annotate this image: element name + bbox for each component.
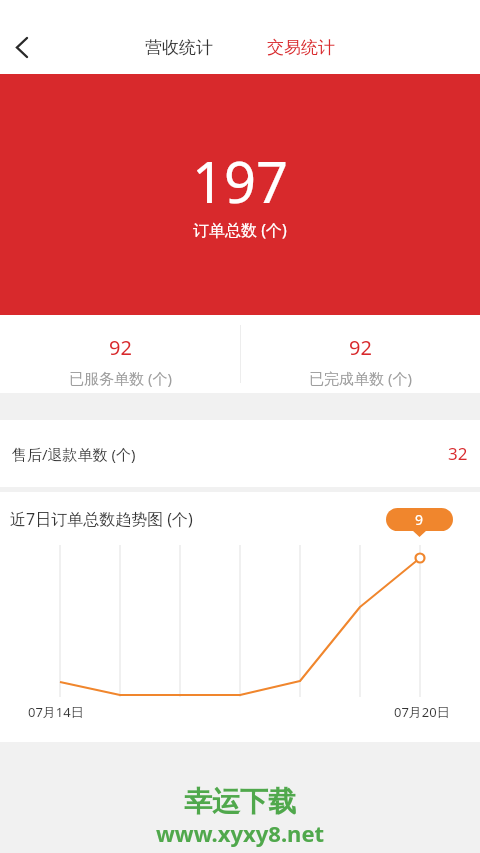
button[interactable]: 售后/退款单数 (个) (0, 420, 480, 487)
staticText: 32 (448, 442, 468, 465)
button[interactable] (2, 27, 42, 67)
staticText: 售后/退款单数 (个) (12, 444, 136, 464)
button[interactable]: 交易统计 (267, 37, 335, 58)
staticText: 197 (192, 143, 289, 219)
staticText: 92 (349, 334, 372, 361)
staticText: 07月20日 (394, 703, 450, 721)
button[interactable]: 营收统计 (145, 37, 213, 58)
staticText: 订单总数 (个) (193, 219, 287, 241)
button[interactable]: 92 (0, 315, 240, 393)
staticText: 已服务单数 (个) (69, 368, 172, 388)
staticText: 营收统计 (145, 37, 213, 58)
staticText: 已完成单数 (个) (309, 368, 412, 388)
staticText: 近7日订单总数趋势图 (个) (10, 508, 193, 530)
staticText: 9 (415, 510, 424, 529)
staticText: 92 (109, 334, 132, 361)
staticText: 交易统计 (267, 37, 335, 58)
staticText: 07月14日 (28, 703, 84, 721)
staticText: 幸运下载 (184, 784, 296, 819)
button[interactable]: 9 (386, 508, 453, 531)
staticText: www.xyxy8.net (156, 818, 325, 848)
button[interactable]: 92 (240, 315, 480, 393)
